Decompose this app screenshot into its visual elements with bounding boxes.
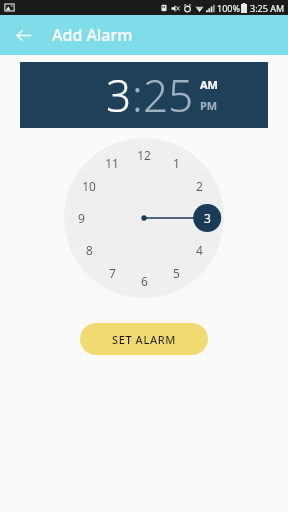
staticText: 7: [109, 265, 116, 281]
staticText: 3: [106, 65, 132, 125]
staticText: 3:25 AM: [250, 2, 285, 14]
staticText: 3: [204, 210, 211, 226]
staticText: PM: [200, 98, 218, 113]
staticText: 10: [82, 178, 96, 194]
staticText: :: [132, 65, 143, 125]
button[interactable]: AM: [200, 77, 218, 92]
staticText: 4: [196, 242, 203, 258]
button[interactable]: 3: [106, 65, 132, 125]
staticText: 8: [86, 242, 93, 258]
staticText: 100%: [217, 2, 240, 14]
staticText: 9: [78, 210, 85, 226]
staticText: 5: [173, 265, 180, 281]
staticText: SET ALARM: [112, 332, 176, 347]
button[interactable]: PM: [200, 98, 218, 113]
staticText: 12: [137, 147, 151, 163]
button[interactable]: Back: [8, 20, 38, 50]
staticText: 1: [173, 155, 180, 171]
staticText: Add Alarm: [52, 24, 133, 46]
staticText: 25: [143, 65, 194, 125]
staticText: 6: [141, 273, 148, 289]
button[interactable]: SET ALARM: [80, 323, 208, 355]
staticText: 2: [196, 178, 203, 194]
staticText: 11: [105, 155, 119, 171]
staticText: AM: [200, 77, 218, 92]
button[interactable]: 25: [143, 65, 194, 125]
button[interactable]: 1: [64, 138, 224, 298]
